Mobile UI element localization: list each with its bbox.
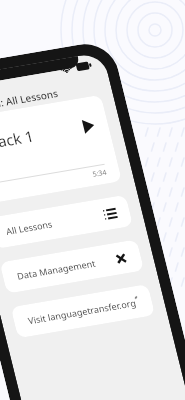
staticText: All Lessons bbox=[0, 198, 58, 256]
button[interactable]: Track 1 bbox=[0, 39, 155, 260]
other: Open website bbox=[129, 295, 145, 310]
staticText: Track 1 bbox=[0, 106, 44, 173]
button[interactable]: Visit languagetransfer.org bbox=[0, 228, 167, 394]
staticText: Visit languagetransfer.org bbox=[22, 253, 141, 370]
other: Data management bbox=[108, 246, 134, 271]
staticText: Spanish: All Lessons bbox=[0, 47, 65, 154]
staticText: 5:34 bbox=[88, 162, 112, 185]
button[interactable]: All Lessons bbox=[0, 139, 145, 305]
button[interactable]: Data Management bbox=[0, 183, 156, 349]
other: Lessons list bbox=[97, 201, 123, 226]
staticText: Data Management bbox=[11, 225, 101, 313]
